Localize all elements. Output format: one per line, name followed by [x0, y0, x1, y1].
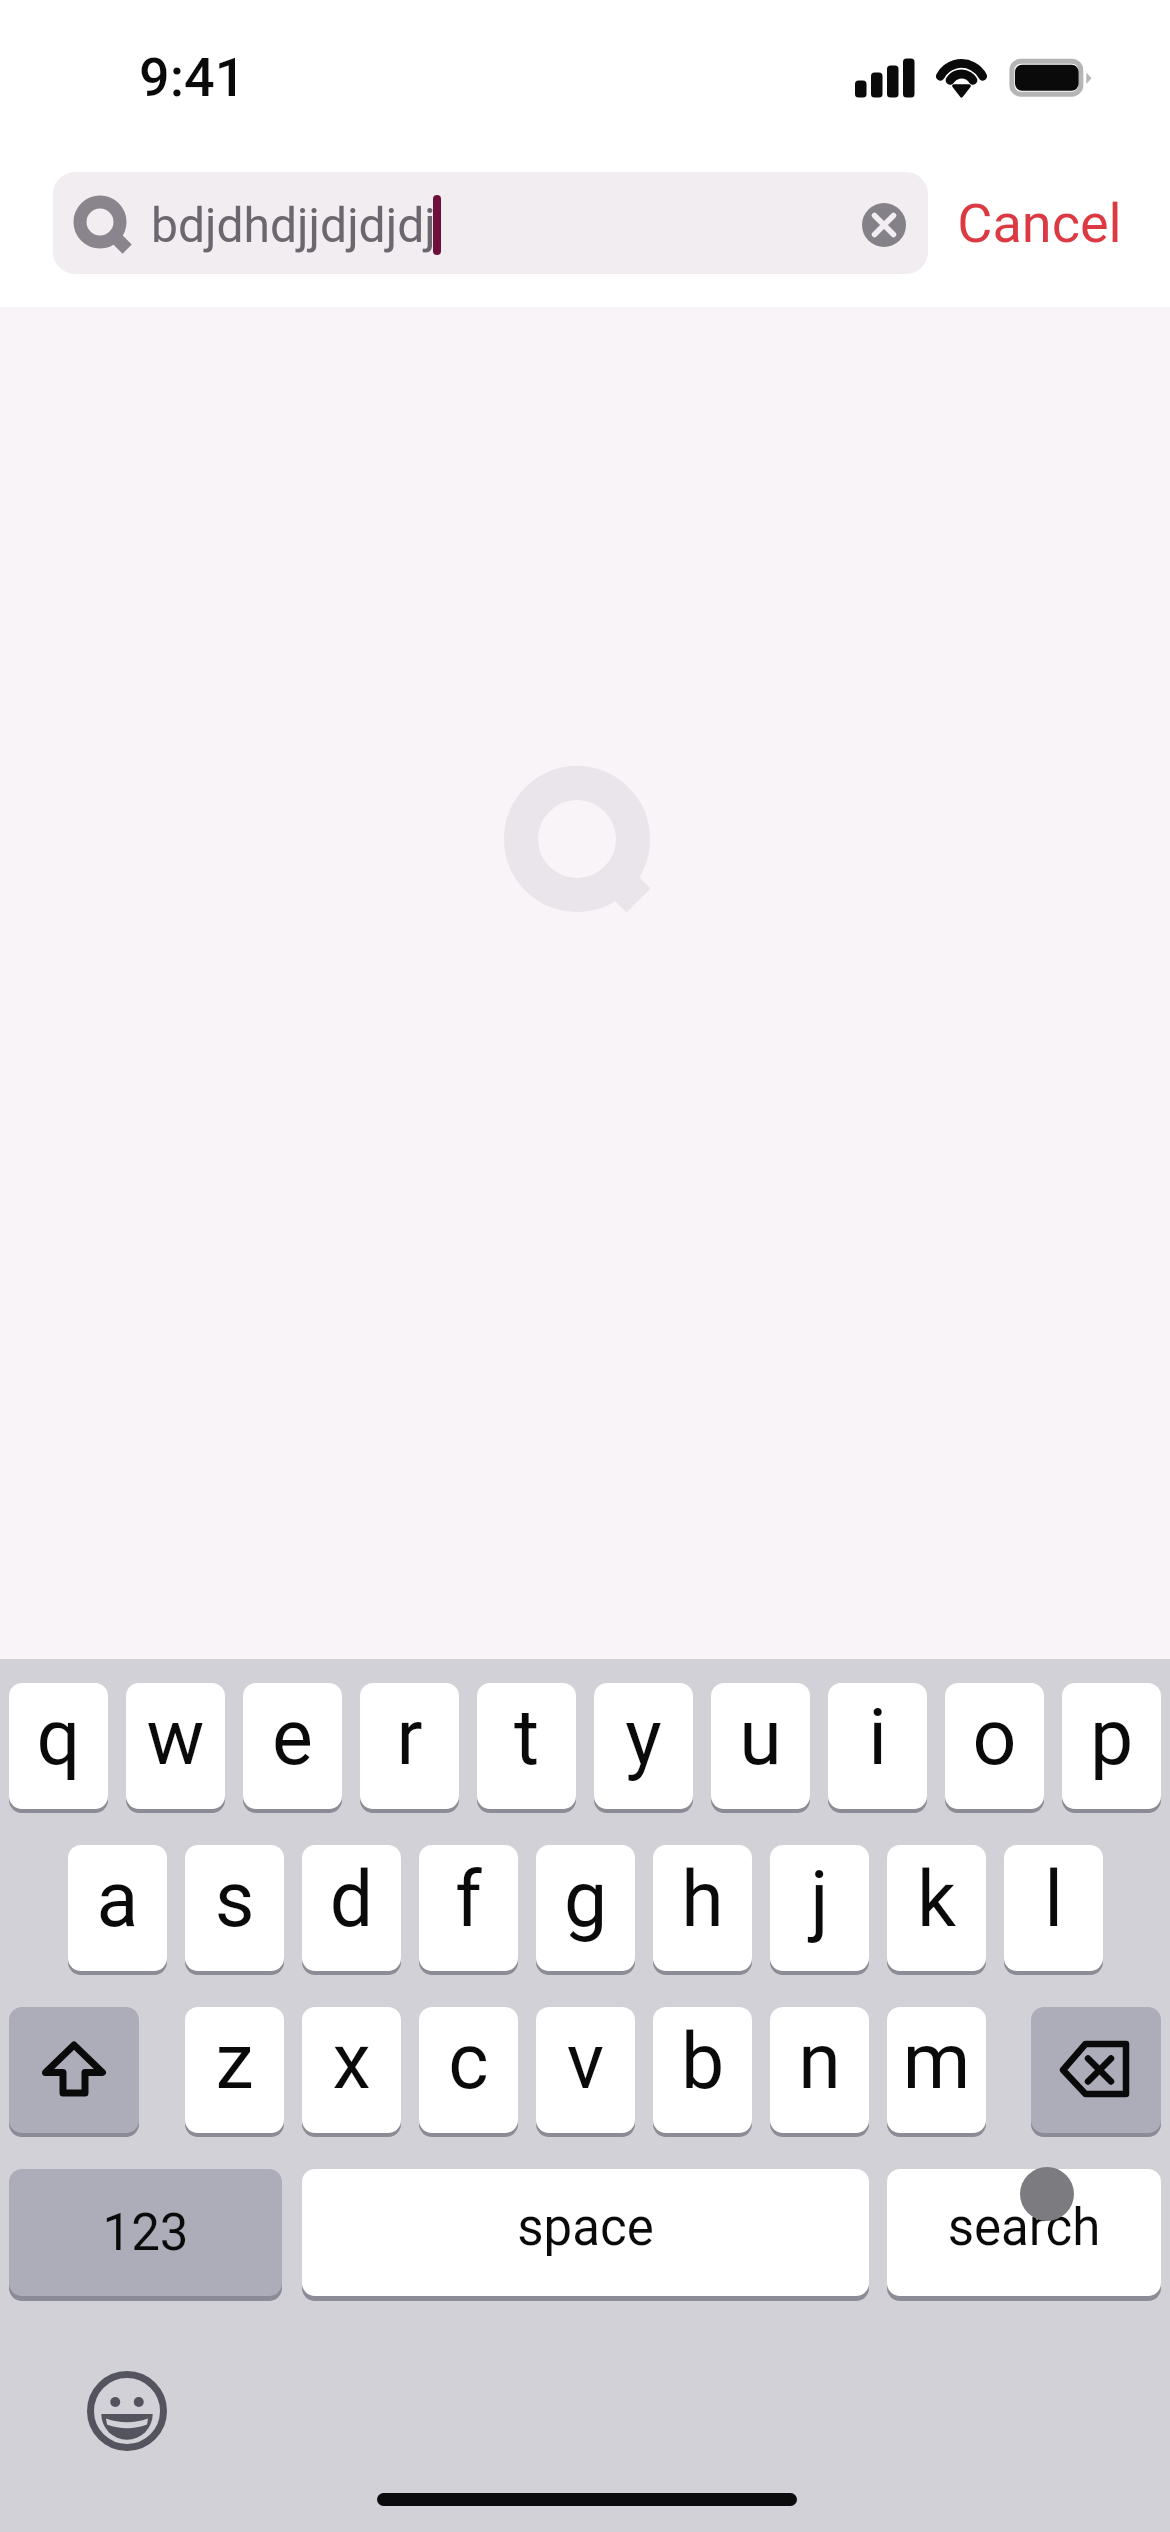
staticText: c — [419, 2017, 518, 2107]
staticText: s — [185, 1855, 284, 1945]
button[interactable]: f — [419, 1845, 518, 1971]
button[interactable]: s — [185, 1845, 284, 1971]
button[interactable]: x — [302, 2007, 401, 2133]
staticText: search — [887, 2198, 1161, 2258]
button[interactable]: d — [302, 1845, 401, 1971]
staticText: b — [653, 2017, 752, 2107]
button[interactable]: Clear text — [862, 203, 906, 247]
staticText: i — [828, 1693, 927, 1783]
button[interactable]: k — [887, 1845, 986, 1971]
staticText: q — [9, 1693, 108, 1783]
button[interactable]: Shift — [9, 2007, 139, 2133]
button[interactable]: c — [419, 2007, 518, 2133]
button[interactable]: e — [243, 1683, 342, 1809]
button[interactable]: n — [770, 2007, 869, 2133]
button[interactable]: t — [477, 1683, 576, 1809]
button[interactable]: g — [536, 1845, 635, 1971]
button[interactable]: o — [945, 1683, 1044, 1809]
staticText: v — [536, 2017, 635, 2107]
button[interactable]: y — [594, 1683, 693, 1809]
staticText: n — [770, 2017, 869, 2107]
button[interactable]: a — [68, 1845, 167, 1971]
staticText: f — [419, 1855, 518, 1945]
button[interactable]: j — [770, 1845, 869, 1971]
staticText: z — [185, 2017, 284, 2107]
button[interactable]: l — [1004, 1845, 1103, 1971]
button[interactable]: m — [887, 2007, 986, 2133]
staticText: w — [126, 1693, 225, 1783]
button[interactable]: Cancel — [941, 172, 1138, 274]
staticText: k — [887, 1855, 986, 1945]
button[interactable]: h — [653, 1845, 752, 1971]
button[interactable]: z — [185, 2007, 284, 2133]
staticText: d — [302, 1855, 401, 1945]
button[interactable]: q — [9, 1683, 108, 1809]
staticText: x — [302, 2017, 401, 2107]
staticText: j — [770, 1855, 869, 1945]
staticText: u — [711, 1693, 810, 1783]
button[interactable]: space — [302, 2169, 869, 2296]
staticText: h — [653, 1855, 752, 1945]
staticText: r — [360, 1693, 459, 1783]
staticText: o — [945, 1693, 1044, 1783]
staticText: 123 — [9, 2203, 282, 2263]
staticText: t — [477, 1693, 576, 1783]
staticText: e — [243, 1693, 342, 1783]
staticText: m — [887, 2017, 986, 2107]
button[interactable]: p — [1062, 1683, 1161, 1809]
staticText: space — [302, 2198, 869, 2258]
staticText: Cancel — [957, 192, 1122, 255]
staticText: y — [594, 1693, 693, 1783]
button[interactable]: b — [653, 2007, 752, 2133]
button[interactable]: u — [711, 1683, 810, 1809]
button[interactable]: search — [887, 2169, 1161, 2296]
button[interactable]: Backspace — [1031, 2007, 1161, 2133]
button[interactable]: 123 — [9, 2169, 282, 2296]
button[interactable]: r — [360, 1683, 459, 1809]
staticText: p — [1062, 1693, 1161, 1783]
button[interactable]: v — [536, 2007, 635, 2133]
button[interactable]: bdjdhdjjdjdjdj — [53, 172, 928, 274]
button[interactable]: w — [126, 1683, 225, 1809]
button[interactable]: i — [828, 1683, 927, 1809]
staticText: a — [68, 1855, 167, 1945]
staticText: bdjdhdjjdjdjdj — [151, 197, 436, 253]
staticText: l — [1004, 1855, 1103, 1945]
staticText: g — [536, 1855, 635, 1945]
button[interactable]: Emoji keyboard — [83, 2367, 171, 2455]
staticText: 9:41 — [139, 46, 246, 109]
